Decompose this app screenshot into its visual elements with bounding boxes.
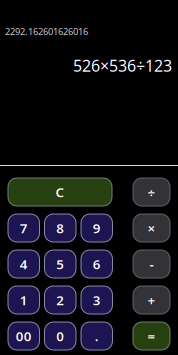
button[interactable]: 8	[44, 214, 76, 242]
button[interactable]: 2	[44, 286, 76, 314]
staticText: 0	[56, 327, 64, 345]
button[interactable]: C	[8, 178, 112, 206]
button[interactable]: +	[133, 286, 170, 314]
staticText: 526×536÷123	[73, 55, 172, 76]
staticText: -	[149, 255, 153, 273]
staticText: 00	[16, 327, 32, 345]
button[interactable]: 00	[8, 322, 39, 350]
staticText: +	[147, 291, 155, 309]
staticText: ÷	[147, 183, 155, 201]
staticText: 3	[93, 291, 101, 309]
staticText: 2	[56, 291, 64, 309]
staticText: 9	[93, 219, 101, 237]
staticText: =	[147, 327, 155, 345]
staticText: 6	[93, 255, 101, 273]
button[interactable]: ÷	[133, 178, 170, 206]
staticText: C	[55, 183, 64, 201]
button[interactable]: -	[133, 250, 170, 278]
button[interactable]: =	[133, 322, 170, 350]
staticText: 7	[20, 219, 28, 237]
button[interactable]: .	[81, 322, 112, 350]
staticText: 8	[56, 219, 64, 237]
button[interactable]: 7	[8, 214, 39, 242]
button[interactable]: 0	[44, 322, 76, 350]
button[interactable]: 1	[8, 286, 39, 314]
staticText: 2292.162601626016	[5, 25, 88, 38]
button[interactable]: ×	[133, 214, 170, 242]
button[interactable]: 4	[8, 250, 39, 278]
staticText: ×	[147, 219, 155, 237]
staticText: 5	[56, 255, 64, 273]
staticText: .	[95, 327, 99, 345]
button[interactable]: 5	[44, 250, 76, 278]
button[interactable]: 3	[81, 286, 112, 314]
button[interactable]: 9	[81, 214, 112, 242]
staticText: 4	[20, 255, 28, 273]
button[interactable]: 6	[81, 250, 112, 278]
staticText: 1	[20, 291, 28, 309]
